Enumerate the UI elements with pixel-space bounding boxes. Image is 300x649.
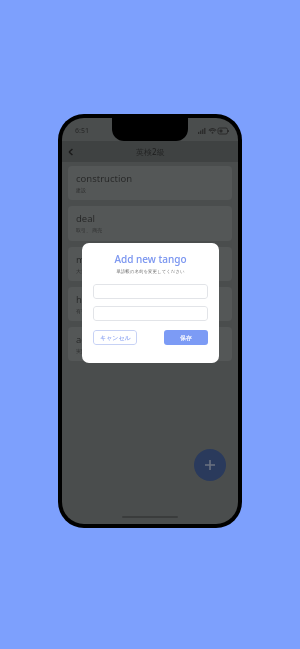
staticText: 単語帳の名前を変更してください (116, 269, 185, 275)
staticText: actually (76, 333, 111, 346)
button[interactable]: Back (62, 143, 80, 161)
staticText: Add new tango (114, 252, 187, 266)
button[interactable] (93, 306, 208, 321)
button[interactable]: deal (68, 206, 232, 241)
button[interactable]: キャンセル (93, 330, 137, 345)
button[interactable] (93, 284, 208, 299)
button[interactable]: Add new word (194, 449, 226, 481)
button[interactable]: actually (68, 327, 232, 361)
staticText: 英検2級 (136, 146, 165, 157)
staticText: mass (76, 253, 100, 266)
staticText: 保存 (180, 334, 192, 342)
button[interactable]: construction (68, 166, 232, 200)
staticText: 6:51 (75, 126, 89, 136)
staticText: 実際は (76, 348, 92, 354)
button[interactable]: 保存 (164, 330, 208, 345)
staticText: harmful (76, 293, 112, 306)
staticText: 有害な (76, 308, 92, 314)
staticText: deal (76, 212, 95, 225)
staticText: キャンセル (100, 334, 131, 342)
staticText: 建設 (76, 187, 86, 193)
button[interactable]: mass (68, 247, 232, 281)
staticText: 大量の (76, 268, 92, 274)
staticText: 取引、 商売 (76, 227, 103, 234)
staticText: construction (76, 172, 133, 185)
button[interactable]: harmful (68, 287, 232, 321)
